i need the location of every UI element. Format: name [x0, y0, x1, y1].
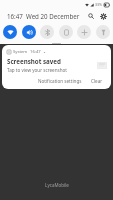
button[interactable]: Search [86, 11, 96, 21]
button[interactable]: Add [77, 25, 91, 39]
button[interactable]: Auto rotate [59, 25, 73, 39]
button[interactable]: Wi-Fi [3, 25, 17, 39]
button[interactable]: Settings [98, 11, 108, 21]
button[interactable]: Notification settings [36, 77, 84, 85]
staticText: Wed 20 December [26, 12, 80, 20]
staticText: Tap to view your screenshot [7, 67, 67, 73]
staticText: System [13, 49, 28, 55]
button[interactable]: Sound [22, 25, 36, 39]
staticText: Clear [91, 78, 103, 84]
button[interactable]: Flashlight [96, 25, 110, 39]
staticText: Notification settings [38, 78, 82, 84]
staticText: 16:47 [7, 12, 23, 20]
button[interactable]: Bluetooth [40, 25, 54, 39]
button[interactable]: Clear [89, 77, 105, 85]
button[interactable]: Screenshot preview [97, 62, 107, 69]
staticText: 16:47 [30, 49, 41, 55]
staticText: Screenshot saved [7, 57, 61, 65]
staticText: 33% [95, 2, 103, 7]
staticText: LycaMobile [45, 182, 69, 188]
